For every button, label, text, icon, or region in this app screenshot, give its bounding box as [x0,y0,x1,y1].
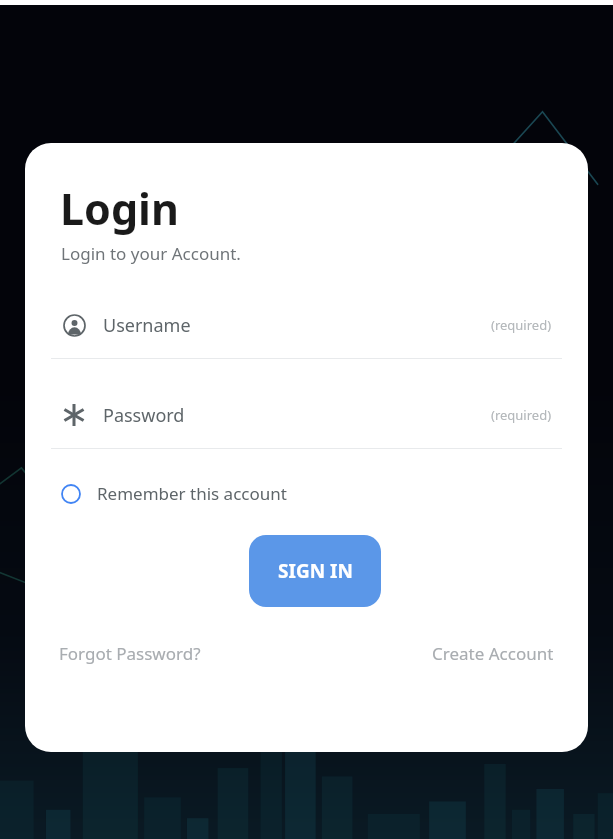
other: Password [62,403,86,427]
staticText: Create Account [432,642,554,665]
button[interactable]: Username [35,312,578,359]
staticText: Username [103,313,191,338]
staticText: Login to your Account. [61,242,241,265]
staticText: Login [60,179,179,238]
other: Username [63,314,86,337]
button[interactable]: Forgot Password? [53,636,207,671]
staticText: Password [103,403,185,428]
staticText: (required) [491,316,552,334]
button[interactable]: Create Account [426,636,560,671]
button[interactable]: SIGN IN [249,535,381,607]
button[interactable]: Password [35,402,578,449]
button[interactable]: Remember this account [55,476,299,511]
staticText: SIGN IN [278,558,353,584]
staticText: (required) [491,406,552,424]
staticText: Forgot Password? [59,642,201,665]
staticText: Remember this account [97,482,287,505]
